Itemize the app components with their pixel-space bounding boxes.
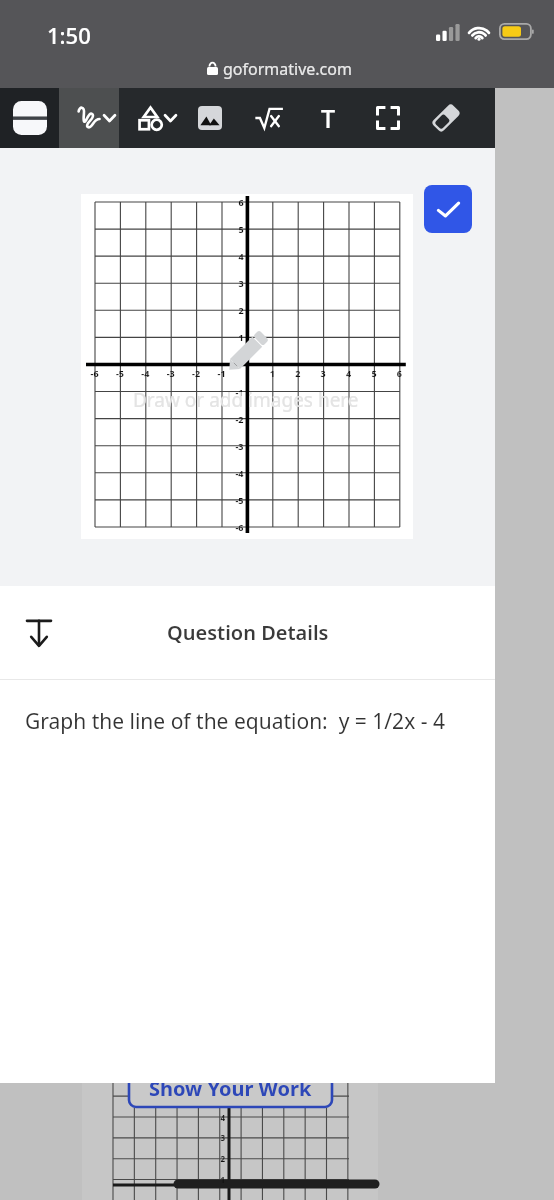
button[interactable]: Math equation [239,88,299,148]
button[interactable]: Eraser [417,88,475,148]
staticText: Draw or add images here [133,387,359,413]
staticText: 1:50 [47,20,91,50]
staticText: Question Details [167,619,329,646]
button[interactable]: Text [299,88,358,148]
button[interactable]: Draw [59,88,119,148]
button[interactable]: Insert image [181,88,239,148]
button[interactable]: Select tool [0,88,59,148]
button[interactable]: Done [424,185,472,233]
button[interactable]: Question Details [0,586,495,680]
staticText: goformative.com [223,58,352,80]
button[interactable]: Shapes [119,88,181,148]
staticText: Show Your Work [149,1075,312,1102]
button[interactable]: Crop [358,88,417,148]
staticText: T [321,101,336,135]
button[interactable]: Show Your Work [128,1052,333,1108]
staticText: Graph the line of the equation: y = 1/2x… [25,707,445,736]
